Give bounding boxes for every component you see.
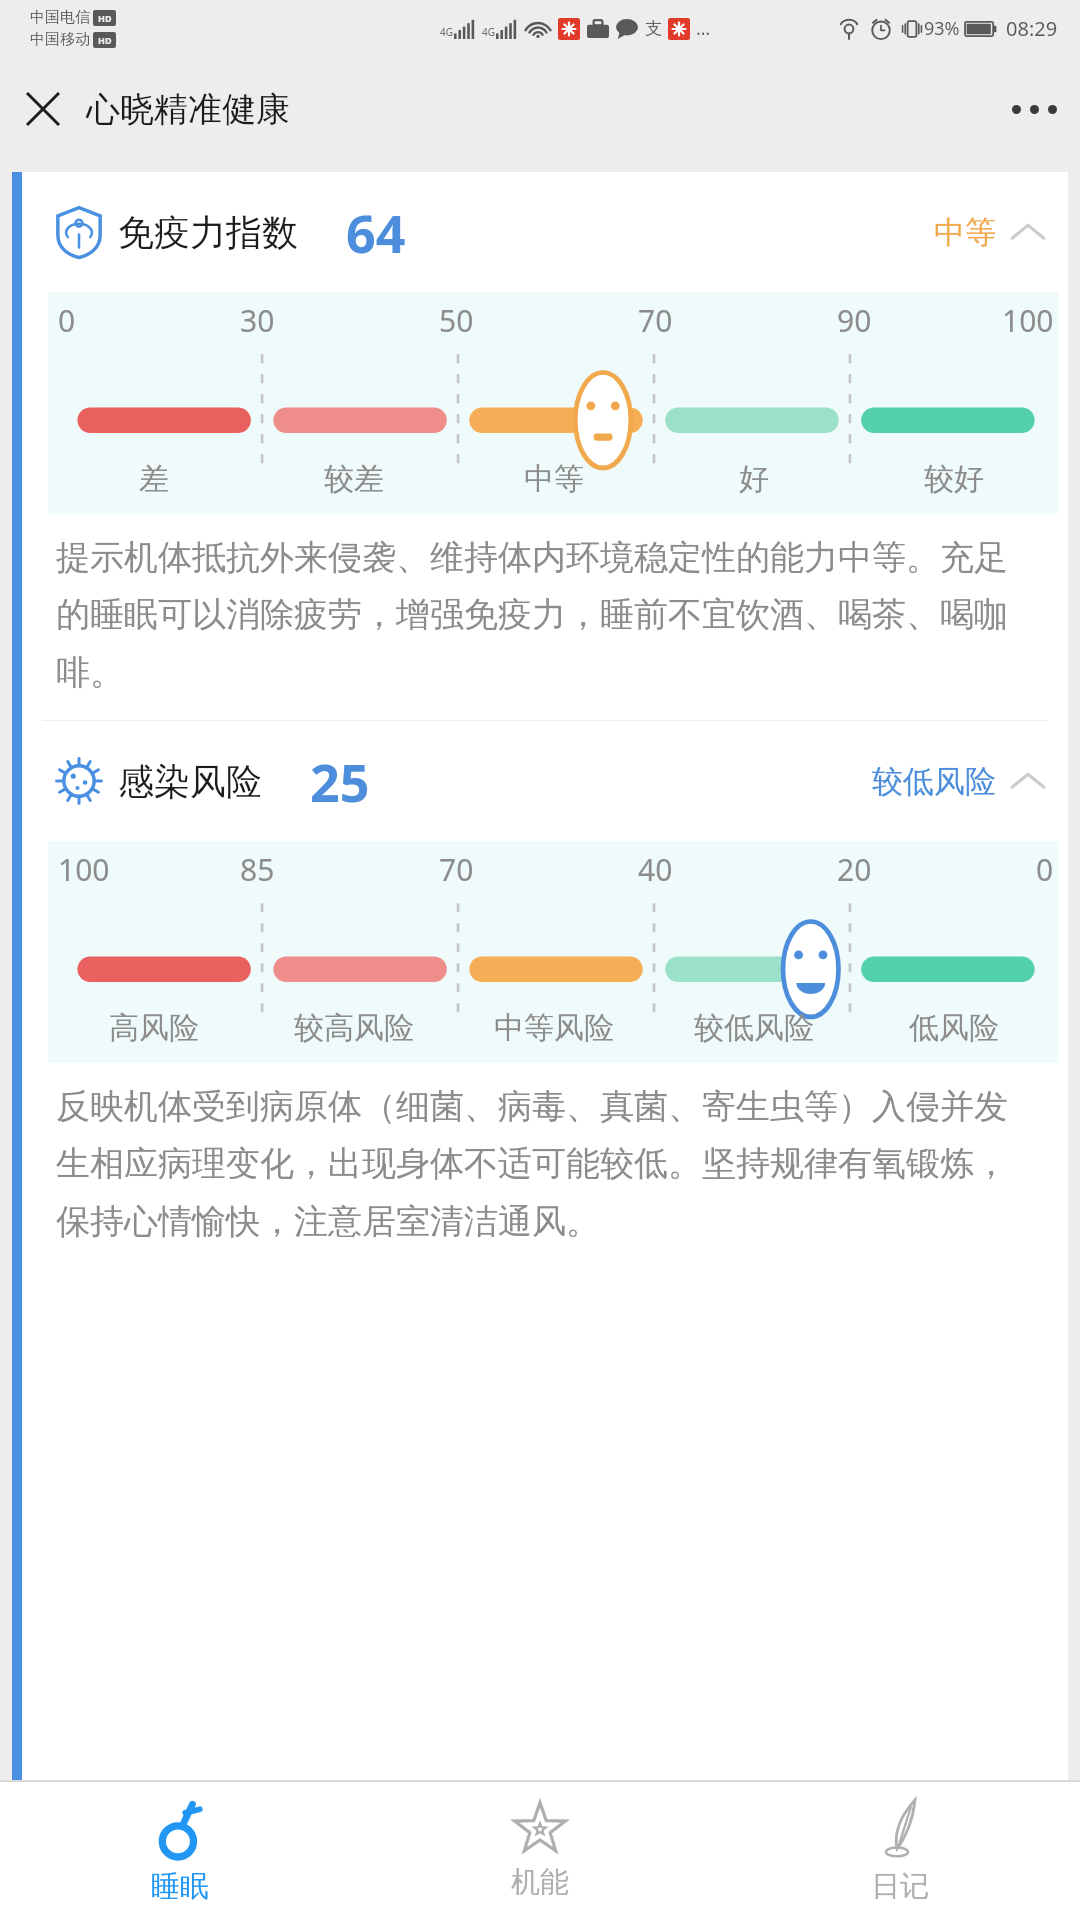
staticText: 70 xyxy=(638,300,673,341)
staticText: 较好 xyxy=(924,460,984,498)
button[interactable]: 感染风险 xyxy=(22,721,1068,841)
staticText: 免疫力指数 xyxy=(118,210,298,255)
staticText: 日记 xyxy=(871,1868,929,1905)
staticText: 提示机体抵抗外来侵袭、维持体内环境稳定性的能力中等。充足的睡眠可以消除疲劳，增强… xyxy=(56,536,1040,694)
staticText: 85 xyxy=(240,849,275,890)
staticText: 反映机体受到病原体（细菌、病毒、真菌、寄生虫等）入侵并发生相应病理变化，出现身体… xyxy=(56,1085,1040,1243)
staticText: 心晓精准健康 xyxy=(86,88,290,131)
staticText: 中国移动 xyxy=(30,30,90,49)
button[interactable]: 免疫力指数 xyxy=(22,172,1068,292)
staticText: 90 xyxy=(837,300,872,341)
button[interactable]: 日记 xyxy=(720,1782,1080,1920)
staticText: 20 xyxy=(837,849,872,890)
button[interactable]: 睡眠 xyxy=(0,1782,360,1920)
staticText: 较低风险 xyxy=(872,762,996,801)
staticText: 睡眠 xyxy=(151,1868,209,1905)
staticText: 机能 xyxy=(511,1864,569,1901)
staticText: 4G xyxy=(482,25,495,39)
staticText: 0 xyxy=(1036,849,1054,890)
staticText: 25 xyxy=(310,746,370,817)
staticText: HD xyxy=(98,34,112,46)
staticText: 100 xyxy=(58,849,110,890)
staticText: 中等 xyxy=(934,213,996,252)
staticText: 中等风险 xyxy=(494,1009,614,1047)
staticText: HD xyxy=(98,12,112,24)
staticText: 较低风险 xyxy=(694,1009,814,1047)
staticText: 70 xyxy=(439,849,474,890)
staticText: 100 xyxy=(1002,300,1054,341)
staticText: 50 xyxy=(439,300,474,341)
staticText: 40 xyxy=(638,849,673,890)
staticText: 08:29 xyxy=(1006,15,1058,42)
staticText: 差 xyxy=(139,460,169,498)
staticText: 较高风险 xyxy=(294,1009,414,1047)
button[interactable]: 机能 xyxy=(360,1782,720,1920)
staticText: 较差 xyxy=(324,460,384,498)
staticText: 64 xyxy=(346,197,406,268)
staticText: 93% xyxy=(924,16,960,41)
staticText: 0 xyxy=(58,300,76,341)
button[interactable]: More options xyxy=(988,63,1080,155)
staticText: 4G xyxy=(440,25,453,39)
staticText: 低风险 xyxy=(909,1009,999,1047)
staticText: 中国电信 xyxy=(30,8,90,27)
staticText: 30 xyxy=(240,300,275,341)
staticText: 高风险 xyxy=(109,1009,199,1047)
staticText: 中等 xyxy=(524,460,584,498)
staticText: 支 xyxy=(645,18,662,39)
staticText: 感染风险 xyxy=(118,759,262,804)
staticText: 好 xyxy=(739,460,769,498)
button[interactable]: Close xyxy=(0,66,86,152)
staticText: … xyxy=(696,16,711,41)
